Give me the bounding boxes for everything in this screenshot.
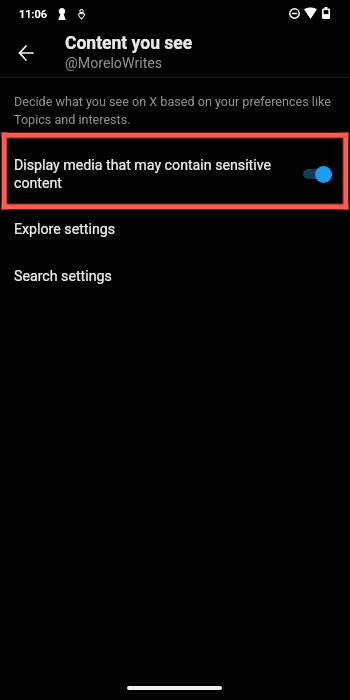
staticText: Decide what you see on X based on your p… [14, 92, 334, 128]
button[interactable]: Search settings [0, 253, 350, 300]
button[interactable]: Display media that may contain sensitive… [0, 141, 350, 206]
button[interactable]: Display media that may contain sensitive… [303, 164, 332, 184]
button[interactable]: Explore settings [0, 206, 350, 253]
staticText: 11:06 [19, 8, 47, 21]
staticText: Content you see [65, 34, 193, 53]
staticText: Display media that may contain sensitive… [14, 156, 291, 192]
button[interactable]: Back [4, 32, 46, 74]
staticText: Search settings [14, 268, 112, 285]
staticText: @MoreloWrites [65, 55, 163, 72]
staticText: Explore settings [14, 221, 116, 238]
